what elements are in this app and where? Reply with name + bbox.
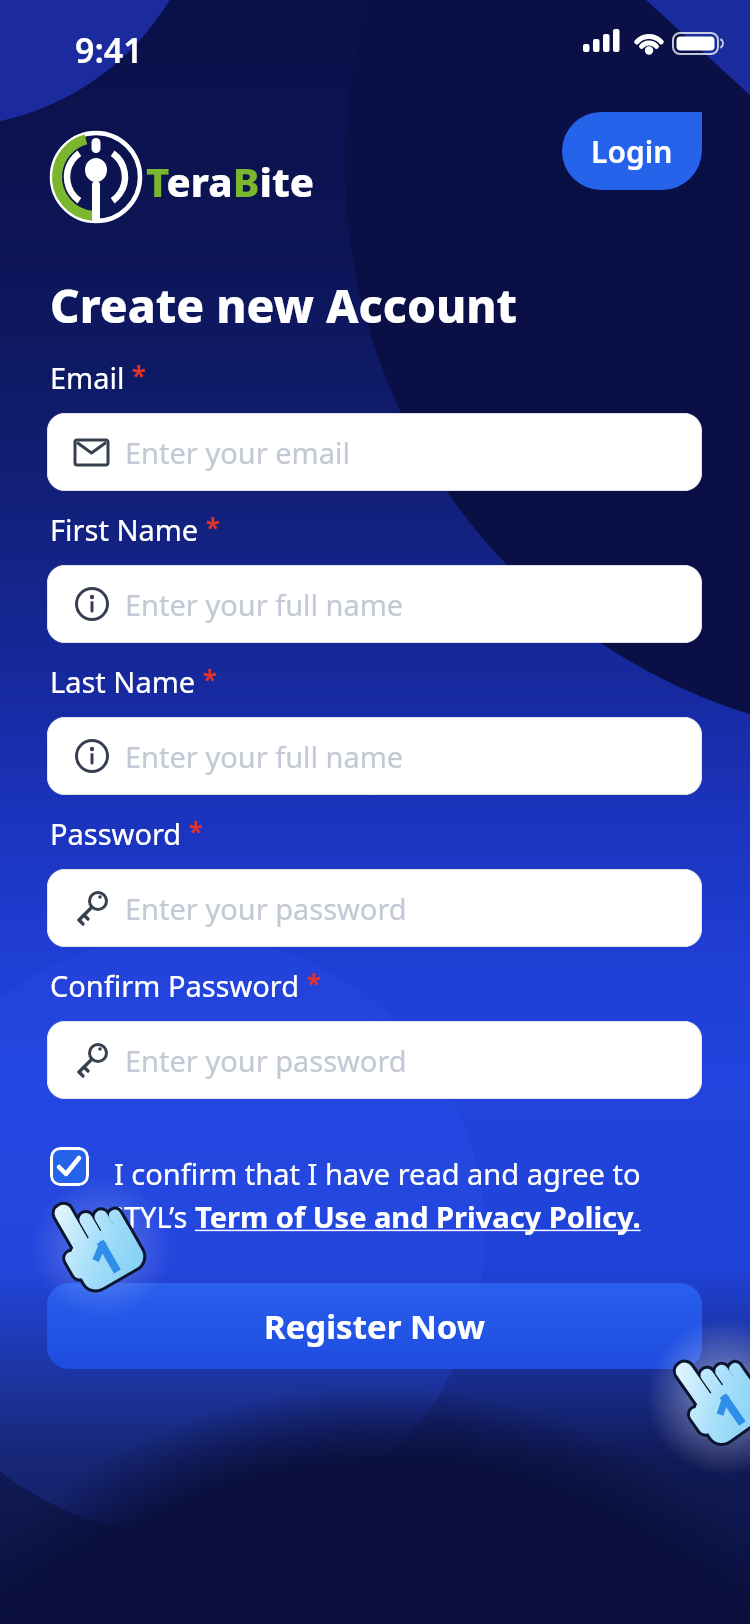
staticText: Enter your password: [125, 889, 407, 928]
staticText: 9:41: [75, 27, 143, 73]
button[interactable]: Login: [562, 112, 702, 190]
staticText: *: [182, 814, 203, 849]
staticText: Create new Account: [50, 274, 518, 337]
staticText: *: [125, 358, 146, 393]
staticText: Last Name: [50, 662, 196, 701]
button[interactable]: Enter your password: [47, 1021, 702, 1099]
button[interactable]: [50, 1147, 89, 1186]
button[interactable]: Register Now: [47, 1283, 702, 1369]
button[interactable]: STYL’s Term of Use and Privacy Policy.: [108, 1197, 641, 1236]
staticText: First Name: [50, 510, 199, 549]
staticText: Enter your password: [125, 1041, 407, 1080]
button[interactable]: Enter your email: [47, 413, 702, 491]
staticText: *: [199, 510, 220, 545]
staticText: TeraBite: [146, 154, 315, 208]
staticText: Confirm Password: [50, 966, 300, 1005]
staticText: I confirm that I have read and agree to: [114, 1154, 641, 1193]
staticText: Enter your full name: [125, 737, 404, 776]
staticText: Password: [50, 814, 182, 853]
staticText: *: [196, 662, 217, 697]
staticText: Enter your full name: [125, 585, 404, 624]
staticText: Login: [591, 131, 673, 172]
staticText: Enter your email: [125, 433, 350, 472]
staticText: Email: [50, 358, 125, 397]
button[interactable]: Enter your password: [47, 869, 702, 947]
button[interactable]: Enter your full name: [47, 565, 702, 643]
staticText: *: [300, 966, 321, 1001]
staticText: Register Now: [264, 1304, 486, 1349]
button[interactable]: Enter your full name: [47, 717, 702, 795]
